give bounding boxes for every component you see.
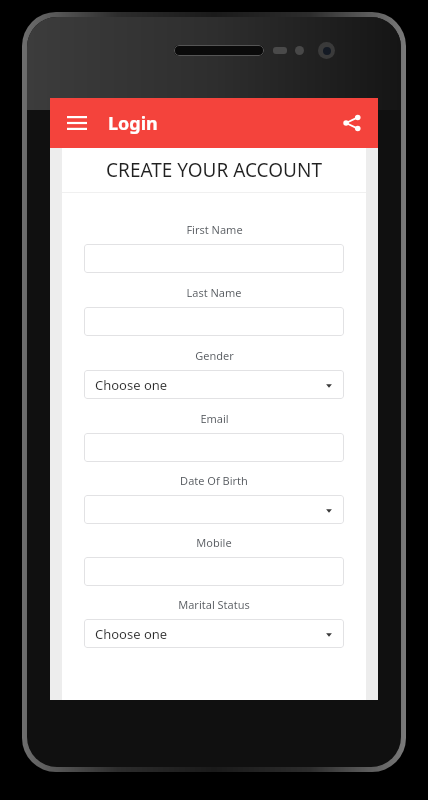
staticText: Choose one <box>95 376 168 394</box>
button[interactable]: Choose one <box>84 619 344 648</box>
button[interactable]: Open navigation menu <box>60 106 94 140</box>
staticText: Marital Status <box>178 597 250 612</box>
staticText: CREATE YOUR ACCOUNT <box>106 157 322 183</box>
button[interactable] <box>84 495 344 524</box>
button[interactable]: Share <box>332 103 372 143</box>
staticText: Date Of Birth <box>180 473 248 488</box>
button[interactable] <box>84 307 344 336</box>
button[interactable] <box>84 557 344 586</box>
button[interactable] <box>84 433 344 462</box>
staticText: Mobile <box>196 535 232 550</box>
staticText: First Name <box>186 222 243 237</box>
button[interactable] <box>84 244 344 273</box>
staticText: Email <box>200 411 229 426</box>
staticText: Login <box>108 111 158 136</box>
staticText: Last Name <box>186 285 242 300</box>
button[interactable]: Choose one <box>84 370 344 399</box>
staticText: Choose one <box>95 625 168 643</box>
staticText: Gender <box>195 348 234 363</box>
